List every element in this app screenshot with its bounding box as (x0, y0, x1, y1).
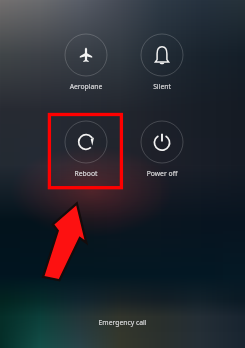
staticText: Emergency call (62, 318, 183, 348)
staticText: Power off (132, 169, 192, 249)
button[interactable]: Reboot (56, 121, 116, 201)
staticText: Reboot (56, 169, 116, 249)
button[interactable]: Emergency call (62, 318, 183, 348)
staticText: Aeroplane (56, 82, 116, 162)
staticText: Silent (132, 82, 192, 162)
button[interactable]: Power off (132, 121, 192, 201)
button[interactable]: Silent (132, 34, 192, 114)
button[interactable]: Aeroplane (56, 34, 116, 114)
